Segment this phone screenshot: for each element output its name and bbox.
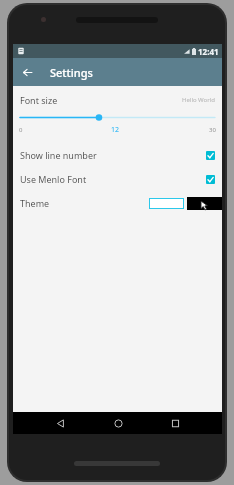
button[interactable]: Use Menlo Font bbox=[13, 167, 222, 191]
staticText: Hello World bbox=[182, 96, 215, 104]
staticText: 0 bbox=[19, 126, 23, 134]
staticText: Theme bbox=[20, 197, 50, 209]
button[interactable]: Font size bbox=[13, 89, 222, 111]
button[interactable]: Theme field bbox=[149, 198, 184, 209]
button[interactable]: Theme bbox=[13, 191, 222, 215]
staticText: 12 bbox=[111, 125, 120, 135]
staticText: Show line number bbox=[20, 149, 97, 161]
staticText: Use Menlo Font bbox=[20, 173, 87, 185]
button[interactable]: Font size slider bbox=[13, 111, 222, 124]
staticText: Settings bbox=[50, 65, 93, 80]
staticText: 12:41 bbox=[198, 46, 219, 57]
button[interactable]: Back bbox=[49, 412, 71, 434]
button[interactable]: Home bbox=[107, 412, 129, 434]
button[interactable]: Back bbox=[13, 58, 41, 86]
button[interactable]: Show line number bbox=[13, 143, 222, 167]
staticText: 30 bbox=[209, 126, 216, 134]
button[interactable]: Recents bbox=[164, 412, 186, 434]
button[interactable]: Theme dropdown bbox=[187, 197, 222, 210]
staticText: Font size bbox=[20, 94, 58, 106]
